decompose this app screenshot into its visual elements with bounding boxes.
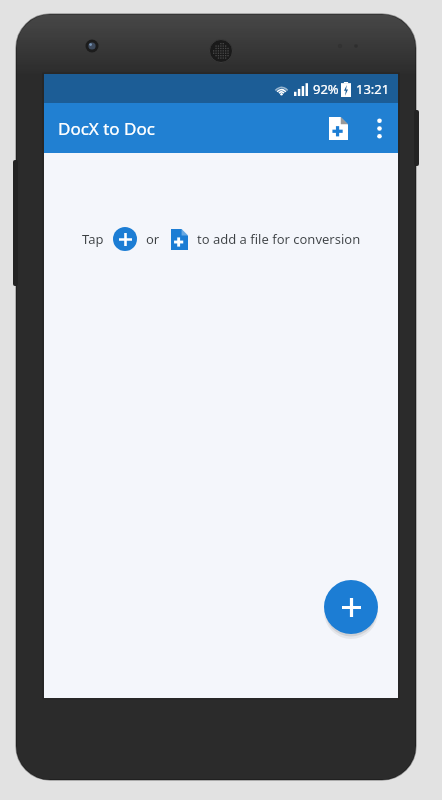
button[interactable]: Add [113, 227, 137, 251]
button[interactable]: More options [360, 106, 398, 150]
button[interactable]: Add file [316, 106, 360, 150]
staticText: Tap [82, 230, 104, 248]
button[interactable]: Add file [324, 580, 378, 634]
button[interactable]: Pick file [169, 227, 189, 251]
staticText: or [146, 230, 160, 248]
staticText: to add a file for conversion [197, 230, 361, 248]
staticText: 92% [313, 80, 339, 98]
staticText: 13:21 [356, 80, 390, 98]
staticText: DocX to Doc [58, 117, 155, 140]
